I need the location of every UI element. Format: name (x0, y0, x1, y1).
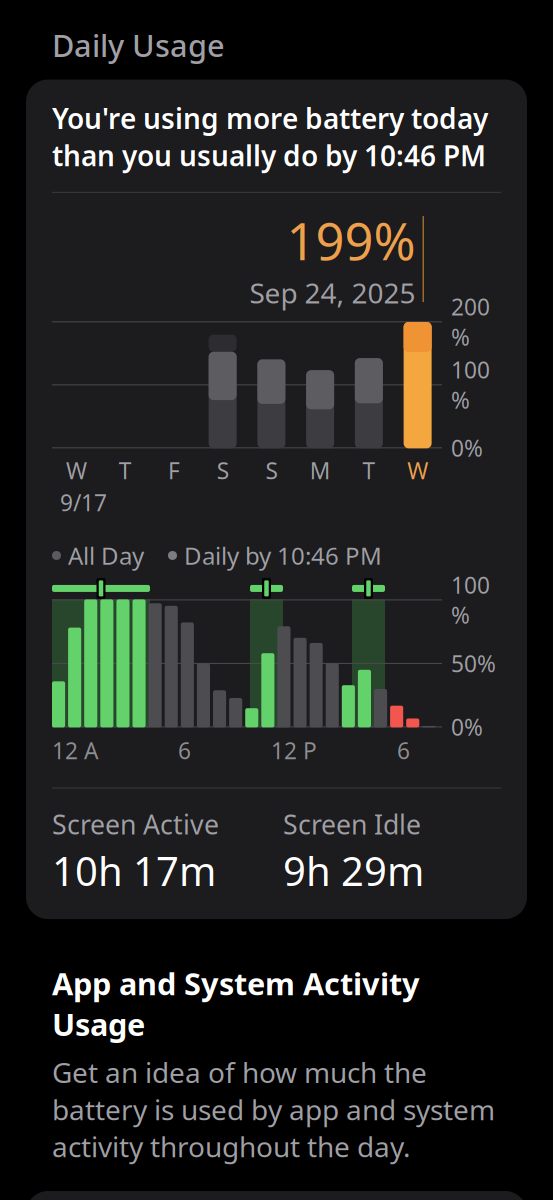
staticText: Sep 24, 2025 (249, 274, 415, 311)
staticText: 199% (286, 207, 415, 274)
staticText: W (407, 455, 428, 485)
staticText: T (362, 455, 375, 485)
staticText: W (66, 455, 87, 485)
staticText: F (168, 455, 180, 485)
staticText: 12 P (271, 735, 317, 765)
staticText: Daily by 10:46 PM (184, 539, 382, 571)
staticText: All Day (68, 539, 144, 571)
staticText: 6 (397, 735, 410, 765)
staticText: 200% (451, 292, 490, 352)
staticText: 12 A (52, 735, 98, 765)
staticText: 10h 17m (52, 844, 216, 897)
staticText: 100% (451, 570, 490, 630)
staticText: 100% (451, 355, 490, 415)
staticText: S (265, 455, 277, 485)
staticText: 0% (451, 712, 483, 742)
staticText: You're using more battery today than you… (52, 99, 488, 174)
staticText: Screen Active (52, 806, 219, 842)
staticText: 6 (178, 735, 191, 765)
staticText: 9/17 (60, 487, 107, 517)
staticText: S (217, 455, 229, 485)
staticText: Screen Idle (283, 806, 421, 842)
staticText: Daily Usage (52, 25, 225, 65)
staticText: T (119, 455, 132, 485)
staticText: App and System Activity Usage (52, 963, 420, 1044)
staticText: Get an idea of how much the battery is u… (52, 1053, 495, 1165)
staticText: 0% (451, 433, 483, 463)
staticText: 9h 29m (283, 844, 424, 897)
staticText: M (310, 455, 331, 485)
staticText: 50% (451, 648, 496, 678)
